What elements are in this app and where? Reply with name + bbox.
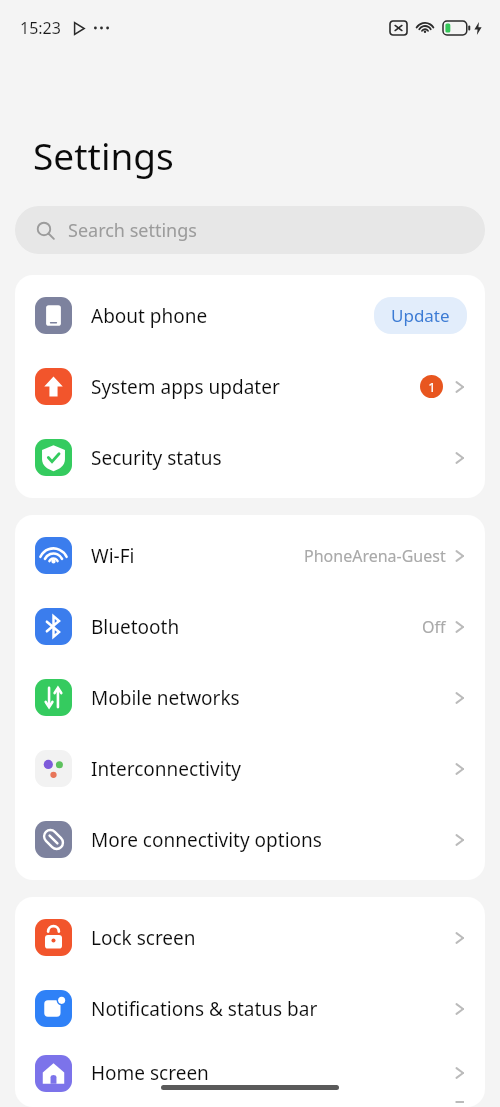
staticText: Update — [391, 304, 450, 327]
other: Open — [453, 829, 467, 851]
button[interactable]: Home screen — [15, 1044, 485, 1102]
other: Open — [453, 447, 467, 469]
staticText: Wi-Fi — [91, 543, 135, 569]
other: Open — [453, 616, 467, 638]
button[interactable]: Security status — [15, 422, 485, 493]
staticText: Lock screen — [91, 925, 196, 951]
staticText: Off — [422, 616, 446, 638]
button[interactable]: Wi-Fi — [15, 520, 485, 591]
button[interactable]: Lock screen — [15, 902, 485, 973]
staticText: Search settings — [68, 218, 197, 243]
staticText: Settings — [33, 130, 174, 180]
staticText: Interconnectivity — [91, 756, 242, 782]
staticText: Bluetooth — [91, 614, 180, 640]
button[interactable]: System apps updater — [15, 351, 485, 422]
button[interactable]: Notifications & status bar — [15, 973, 485, 1044]
button[interactable]: Update — [374, 297, 467, 334]
button[interactable]: About phone — [15, 280, 485, 351]
staticText: Security status — [91, 445, 222, 471]
staticText: System apps updater — [91, 374, 280, 400]
staticText: PhoneArena-Guest — [304, 545, 446, 567]
other: Open — [453, 376, 467, 398]
staticText: 15:23 — [20, 17, 61, 39]
button[interactable]: Bluetooth — [15, 591, 485, 662]
staticText: Notifications & status bar — [91, 996, 318, 1022]
other: Open — [453, 758, 467, 780]
button[interactable]: Mobile networks — [15, 662, 485, 733]
button[interactable]: Interconnectivity — [15, 733, 485, 804]
staticText: Mobile networks — [91, 685, 240, 711]
button[interactable]: More connectivity options — [15, 804, 485, 875]
staticText: 1 — [428, 378, 436, 396]
other: Open — [453, 1062, 467, 1084]
staticText: Home screen — [91, 1060, 209, 1086]
other: Open — [453, 545, 467, 567]
other: Open — [453, 927, 467, 949]
other: Open — [453, 687, 467, 709]
staticText: More connectivity options — [91, 827, 322, 853]
staticText: About phone — [91, 303, 208, 329]
button[interactable]: Search settings — [15, 206, 485, 254]
other: Open — [453, 998, 467, 1020]
